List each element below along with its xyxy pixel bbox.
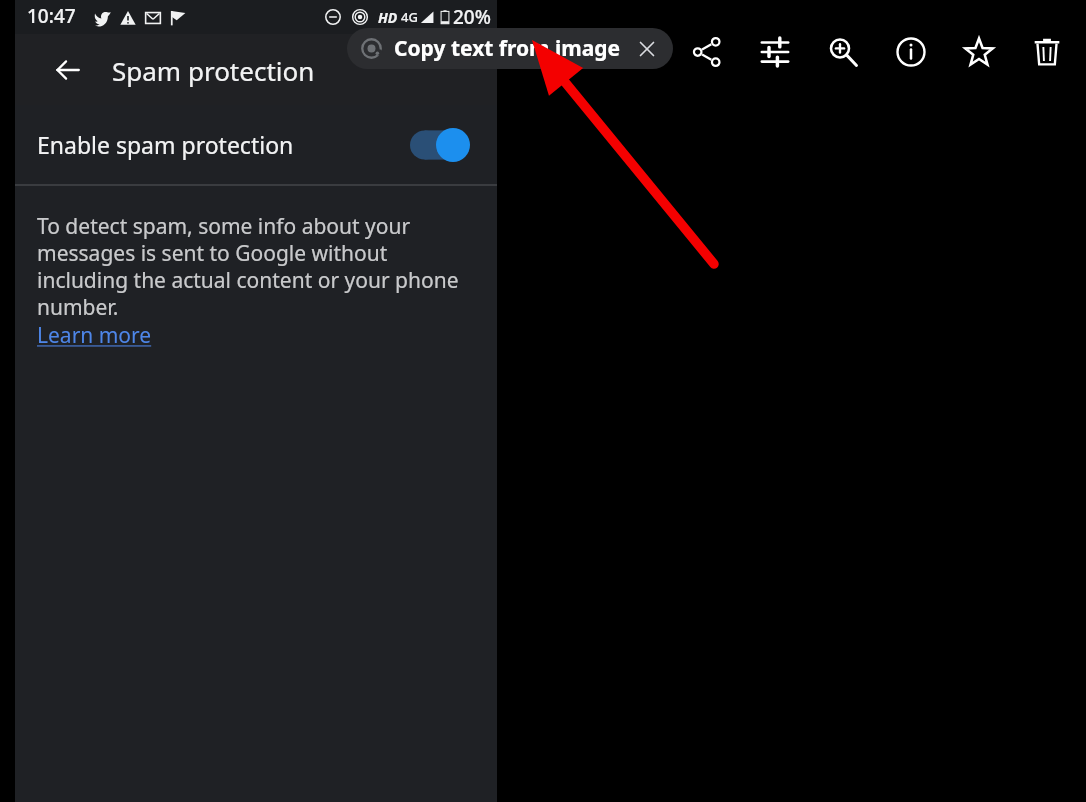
button[interactable]: Dismiss — [635, 37, 659, 61]
staticText: Spam protection — [112, 53, 315, 88]
staticText: Copy text from image — [394, 34, 621, 63]
button[interactable]: Favorite — [953, 26, 1005, 78]
button[interactable]: Adjust — [749, 26, 801, 78]
button[interactable]: Delete — [1021, 26, 1073, 78]
button[interactable]: Enable spam protection — [15, 105, 497, 184]
button[interactable]: Share — [681, 26, 733, 78]
button[interactable]: Learn more — [37, 321, 152, 350]
staticText: 10:47 — [27, 3, 76, 29]
staticText: Learn more — [37, 321, 152, 350]
button[interactable]: Enable spam protection toggle — [410, 128, 470, 162]
staticText: 20% — [453, 4, 491, 30]
staticText: Enable spam protection — [37, 129, 410, 160]
button[interactable]: Details — [885, 26, 937, 78]
button[interactable]: Copy text from image — [347, 28, 673, 69]
button[interactable]: Zoom in — [817, 26, 869, 78]
staticText: 4G — [401, 8, 418, 26]
button[interactable]: Back — [45, 47, 91, 93]
staticText: To detect spam, some info about your mes… — [37, 212, 483, 321]
staticText: HD — [378, 8, 398, 27]
